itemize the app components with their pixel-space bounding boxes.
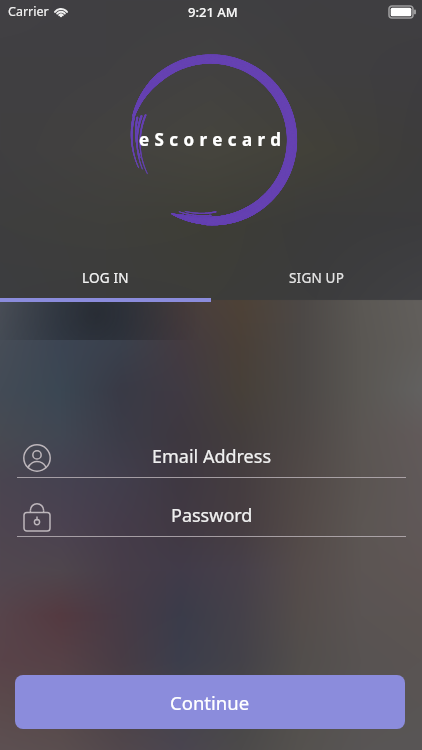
button[interactable]: SIGN UP [211,247,422,298]
staticText: eScorecard [139,128,287,151]
other: Password [23,502,51,532]
staticText: SIGN UP [289,269,345,287]
other: Email address [23,444,51,472]
button[interactable]: LOG IN [0,247,211,298]
button[interactable]: Continue [15,675,405,729]
staticText: Password [171,503,253,528]
staticText: 9:21 AM [188,3,238,21]
staticText: LOG IN [82,269,129,287]
staticText: Email Address [152,444,272,469]
staticText: Carrier [8,3,49,20]
staticText: Continue [170,690,250,715]
